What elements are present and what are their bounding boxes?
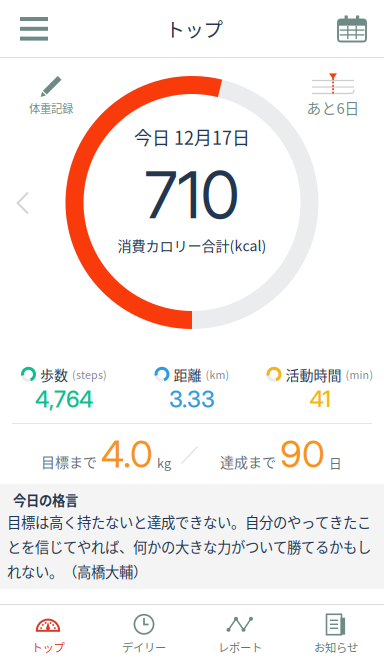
button[interactable]: Calendar — [320, 0, 384, 57]
staticText: 距離 — [173, 364, 201, 384]
button[interactable]: 体重記録 — [8, 75, 94, 116]
staticText: (km) — [205, 367, 229, 382]
staticText: 今日 12月17日 — [134, 124, 250, 150]
staticText: 90 — [280, 431, 325, 477]
staticText: 目標は高く持たないと達成できない。自分のやってきたことを信じてやれば、何かの大き… — [7, 511, 371, 582]
button[interactable]: レポート — [192, 605, 288, 663]
staticText: デイリー — [122, 639, 166, 655]
button[interactable]: お知らせ — [288, 605, 384, 663]
staticText: 活動時間 — [285, 364, 341, 384]
button[interactable]: Menu — [0, 0, 68, 57]
staticText: トップ — [31, 639, 64, 655]
staticText: 今日の格言 — [13, 490, 78, 509]
staticText: 達成まで — [220, 451, 276, 472]
staticText: 3.33 — [169, 385, 215, 413]
staticText: (steps) — [72, 367, 107, 382]
staticText: kg — [157, 453, 171, 471]
staticText: 目標まで — [41, 451, 97, 472]
staticText: (min) — [345, 367, 373, 382]
staticText: レポート — [218, 639, 262, 655]
staticText: 4.0 — [101, 431, 153, 477]
staticText: 41 — [309, 385, 330, 413]
button[interactable]: あと6日 — [290, 73, 376, 118]
staticText: 710 — [144, 156, 239, 234]
staticText: 体重記録 — [29, 100, 73, 116]
button[interactable]: トップ — [0, 605, 96, 663]
staticText: 4,764 — [35, 385, 93, 413]
staticText: 日 — [329, 453, 342, 471]
staticText: お知らせ — [314, 639, 358, 655]
staticText: トップ — [165, 14, 222, 42]
button[interactable]: デイリー — [96, 605, 192, 663]
staticText: あと6日 — [306, 97, 359, 118]
staticText: 消費カロリー合計(kcal) — [117, 235, 266, 255]
staticText: 歩数 — [40, 364, 68, 384]
